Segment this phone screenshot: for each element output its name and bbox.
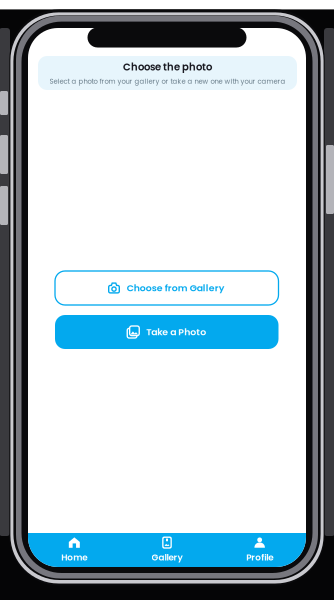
staticText: Select a photo from your gallery or take…: [49, 76, 285, 86]
staticText: Choose from Gallery: [127, 281, 225, 295]
staticText: Gallery: [151, 551, 182, 564]
button[interactable]: Gallery: [121, 533, 213, 567]
button[interactable]: Home: [28, 533, 121, 567]
button[interactable]: Choose from Gallery: [55, 271, 278, 305]
staticText: Profile: [246, 551, 273, 564]
staticText: Take a Photo: [146, 325, 206, 339]
staticText: Choose the photo: [123, 60, 212, 74]
button[interactable]: Take a Photo: [55, 315, 278, 349]
button[interactable]: Profile: [213, 533, 306, 567]
staticText: Home: [61, 551, 87, 564]
